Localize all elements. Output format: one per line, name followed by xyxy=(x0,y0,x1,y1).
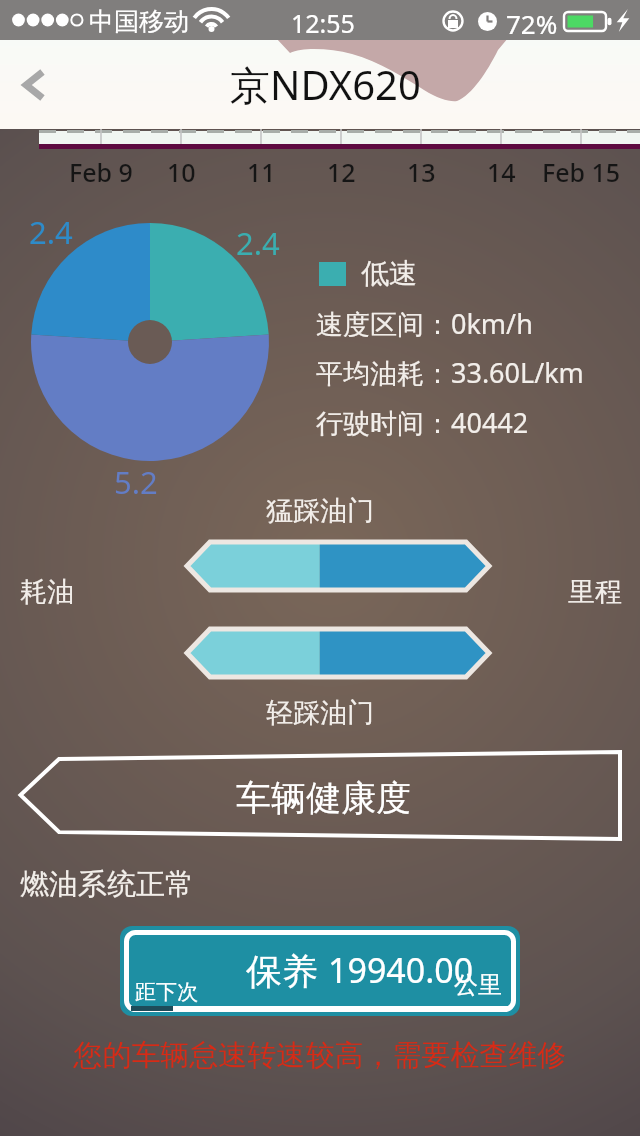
staticText: 平均油耗：33.60L/km xyxy=(316,354,584,391)
staticText: 2.4 xyxy=(29,211,73,253)
button[interactable] xyxy=(187,629,489,677)
staticText: 13 xyxy=(407,155,436,189)
button[interactable]: 距下次 xyxy=(120,926,520,1016)
staticText: 5.2 xyxy=(114,461,158,503)
staticText: 72% xyxy=(506,6,558,41)
button[interactable]: 车辆健康度 xyxy=(18,748,624,844)
staticText: 燃油系统正常 xyxy=(20,866,194,903)
staticText: 10 xyxy=(167,155,196,189)
staticText: 速度区间：0km/h xyxy=(316,305,533,342)
staticText: 12:55 xyxy=(291,6,355,40)
staticText: 您的车辆怠速转速较高，需要检查维修 xyxy=(0,1037,640,1074)
staticText: 里程 xyxy=(568,575,622,609)
staticText: 14 xyxy=(487,155,516,189)
staticText: 公里 xyxy=(454,970,502,1000)
staticText: 行驶时间：40442 xyxy=(316,404,529,441)
staticText: Feb 15 xyxy=(542,155,621,189)
staticText: 轻踩油门 xyxy=(214,696,426,730)
staticText: Feb 9 xyxy=(69,155,133,189)
staticText: 19940.00 xyxy=(328,947,474,993)
staticText: 京NDX620 xyxy=(230,57,421,112)
staticText: 12 xyxy=(327,155,356,189)
button[interactable]: Back xyxy=(0,50,70,120)
staticText: 11 xyxy=(247,155,276,189)
staticText: 低速 xyxy=(361,256,417,291)
staticText: 距下次 xyxy=(135,979,198,1005)
staticText: 猛踩油门 xyxy=(214,494,426,528)
staticText: 车辆健康度 xyxy=(236,776,411,820)
staticText: 耗油 xyxy=(20,575,74,609)
staticText: 中国移动 xyxy=(89,6,189,37)
button[interactable] xyxy=(187,542,489,590)
staticText: 2.4 xyxy=(236,222,280,264)
staticText: 保养 xyxy=(246,949,318,994)
